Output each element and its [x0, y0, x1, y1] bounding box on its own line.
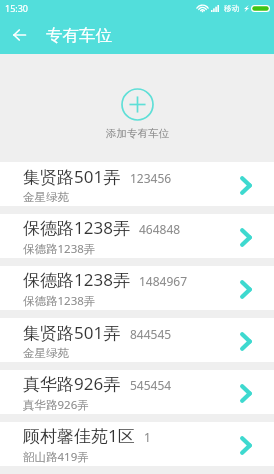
staticText: 添加专有车位: [106, 127, 169, 140]
button[interactable]: 保德路1238弄: [0, 214, 274, 258]
staticText: 1484967: [139, 273, 188, 289]
staticText: 545454: [130, 377, 172, 393]
staticText: 保德路1238弄: [23, 241, 96, 257]
staticText: 金星绿苑: [23, 346, 69, 360]
staticText: 专有车位: [46, 25, 112, 46]
staticText: 金星绿苑: [23, 190, 69, 204]
staticText: 1: [144, 429, 151, 445]
staticText: 韶山路419弄: [23, 449, 89, 465]
button[interactable]: 添加专有车位: [106, 88, 169, 140]
staticText: 真华路926弄: [23, 397, 89, 413]
staticText: 15:30: [5, 2, 29, 14]
button[interactable]: 集贤路501弄: [0, 162, 274, 206]
button[interactable]: 保德路1238弄: [0, 266, 274, 310]
staticText: 保德路1238弄: [23, 216, 130, 239]
button[interactable]: 真华路926弄: [0, 370, 274, 414]
staticText: 保德路1238弄: [23, 268, 130, 291]
staticText: 集贤路501弄: [23, 165, 121, 188]
staticText: 移动: [224, 4, 239, 13]
button[interactable]: 集贤路501弄: [0, 318, 274, 362]
staticText: 844545: [130, 326, 172, 342]
staticText: 顾村馨佳苑1区: [23, 424, 135, 447]
button[interactable]: 顾村馨佳苑1区: [0, 422, 274, 466]
staticText: 集贤路501弄: [23, 321, 121, 344]
button[interactable]: Back: [0, 16, 38, 54]
staticText: 464848: [139, 221, 181, 237]
staticText: 123456: [130, 170, 172, 186]
staticText: 真华路926弄: [23, 372, 121, 395]
staticText: 保德路1238弄: [23, 293, 96, 309]
